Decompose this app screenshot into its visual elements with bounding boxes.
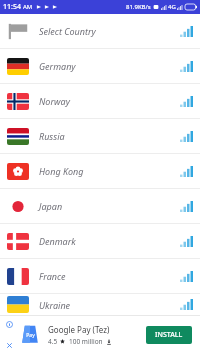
staticText: Denmark [39,235,76,247]
staticText: Japan [39,200,63,212]
button[interactable]: INSTALL [146,326,192,344]
staticText: 4.5 [48,337,58,346]
other: Close ad [6,342,13,349]
staticText: Google Pay (Tez) [48,324,110,335]
button[interactable]: Denmark [0,224,200,259]
staticText: INSTALL [155,330,183,340]
staticText: Norway [39,95,70,107]
button[interactable]: Ukraine [0,294,200,315]
staticText: Russia [39,130,65,142]
staticText: AM [23,3,33,11]
staticText: 4G [168,3,176,11]
staticText: Ukraine [39,299,71,311]
other: Ad info [6,321,13,328]
staticText: 100 million [69,337,103,346]
staticText: 11:54 [3,2,21,12]
staticText: France [39,270,66,282]
staticText: Select Country [39,25,96,37]
button[interactable]: France [0,259,200,294]
staticText: Germany [39,60,76,72]
button[interactable]: Japan [0,189,200,224]
button[interactable]: Select Country [0,14,200,49]
button[interactable]: Norway [0,84,200,119]
button[interactable]: Germany [0,49,200,84]
button[interactable]: Hong Kong [0,154,200,189]
staticText: Pay [26,332,35,339]
staticText: Hong Kong [39,165,84,177]
button[interactable]: Russia [0,119,200,154]
staticText: 81.9KB/s [126,3,151,11]
